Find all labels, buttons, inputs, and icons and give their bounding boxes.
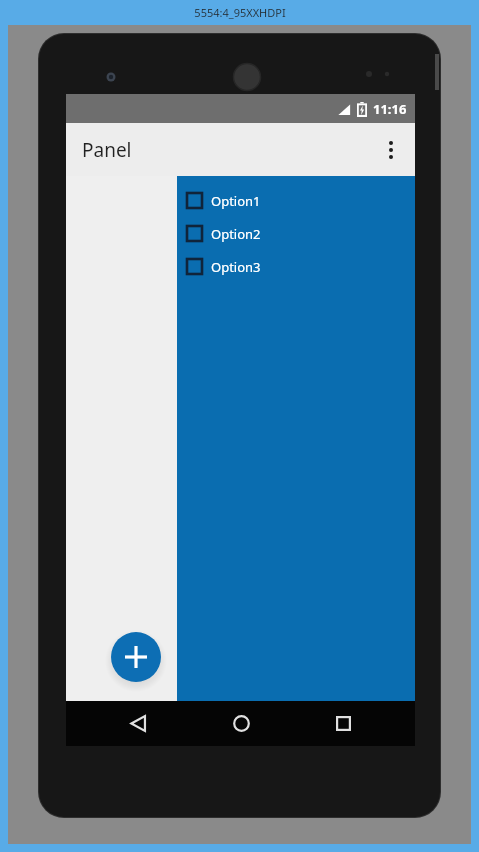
button[interactable]: Add <box>108 629 164 685</box>
button[interactable]: Back <box>108 701 168 746</box>
button[interactable]: Option3 <box>186 250 415 283</box>
button[interactable]: Option1 <box>186 184 415 217</box>
staticText: 5554:4_95XXHDPI <box>194 5 286 20</box>
staticText: 11:16 <box>373 100 407 118</box>
button[interactable]: Option2 <box>186 217 415 250</box>
staticText: Panel <box>82 137 132 163</box>
staticText: Option1 <box>211 192 261 210</box>
button[interactable]: Home <box>211 701 271 746</box>
staticText: Option3 <box>211 258 261 276</box>
button[interactable]: More options <box>367 126 415 174</box>
button[interactable]: Recent apps <box>313 701 373 746</box>
staticText: Option2 <box>211 225 261 243</box>
